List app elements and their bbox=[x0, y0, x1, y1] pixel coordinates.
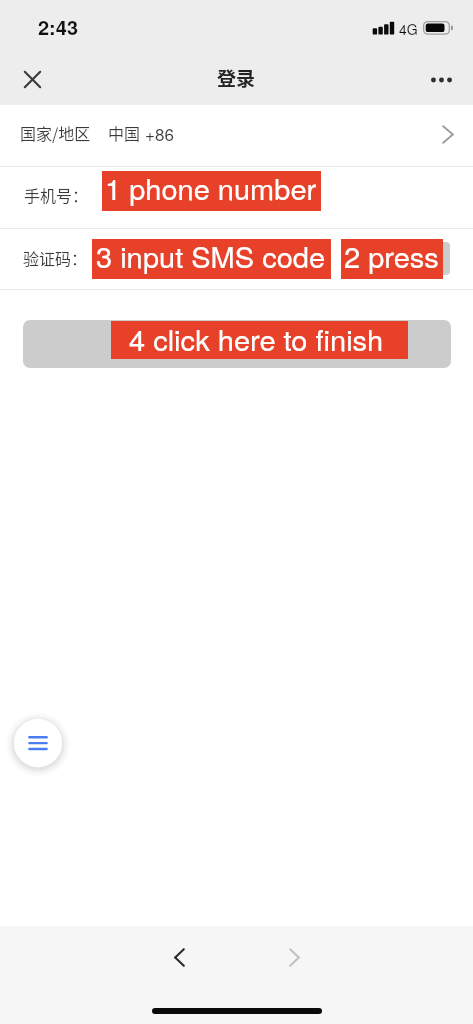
staticText: 验证码： bbox=[23, 246, 88, 269]
staticText: 中国 bbox=[108, 121, 141, 144]
staticText: 国家/地区 bbox=[20, 121, 91, 144]
button[interactable]: Forward bbox=[270, 933, 318, 981]
staticText: 2:43 bbox=[38, 12, 79, 41]
button[interactable] bbox=[341, 242, 450, 275]
button[interactable]: Back bbox=[155, 933, 203, 981]
staticText: 手机号： bbox=[24, 183, 89, 206]
button[interactable]: 1 phone number bbox=[102, 171, 321, 211]
button[interactable]: 4 click here to finish bbox=[111, 321, 408, 359]
staticText: 1 phone number bbox=[105, 167, 317, 207]
button[interactable]: Close bbox=[10, 57, 54, 101]
staticText: 4 click here to finish bbox=[129, 318, 384, 356]
button[interactable]: 2 press bbox=[341, 239, 443, 279]
button[interactable] bbox=[23, 320, 451, 368]
button[interactable]: Menu bbox=[5, 710, 71, 776]
staticText: 2 press bbox=[344, 235, 439, 275]
button[interactable]: More options bbox=[419, 58, 463, 102]
staticText: 4G bbox=[399, 19, 418, 39]
button[interactable]: 国家/地区 bbox=[0, 105, 473, 166]
staticText: 3 input SMS code bbox=[96, 235, 326, 275]
button[interactable]: 3 input SMS code bbox=[92, 239, 331, 279]
staticText: 登录 bbox=[217, 64, 256, 92]
staticText: +86 bbox=[145, 121, 174, 145]
